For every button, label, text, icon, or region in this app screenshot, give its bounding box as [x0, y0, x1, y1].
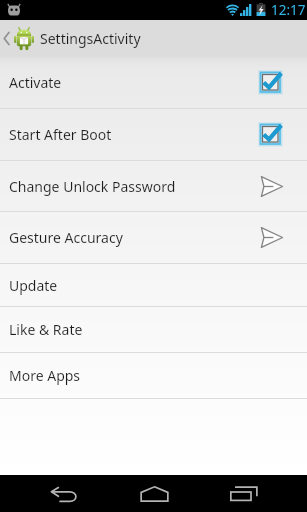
button[interactable]: Gesture Accuracy [0, 212, 307, 263]
staticText: Start After Boot [9, 125, 112, 144]
button[interactable]: Home [109, 475, 199, 512]
button[interactable]: Update [0, 264, 307, 306]
staticText: 12:17 [271, 1, 306, 19]
button[interactable]: Like & Rate [0, 307, 307, 352]
other: Navigate up [3, 31, 10, 46]
button[interactable]: Back [19, 475, 109, 512]
staticText: Update [9, 276, 58, 295]
staticText: Change Unlock Password [9, 177, 176, 196]
button[interactable]: Recent apps [199, 475, 289, 512]
button[interactable]: More Apps [0, 353, 307, 398]
staticText: More Apps [9, 366, 81, 385]
staticText: Like & Rate [9, 320, 83, 339]
button[interactable]: Start After Boot [0, 109, 307, 160]
button[interactable]: Activate [0, 57, 307, 108]
staticText: SettingsActivity [40, 29, 141, 48]
button[interactable]: Navigate up [0, 20, 307, 57]
staticText: Gesture Accuracy [9, 228, 123, 247]
staticText: Activate [9, 73, 62, 92]
button[interactable]: Change Unlock Password [0, 161, 307, 211]
